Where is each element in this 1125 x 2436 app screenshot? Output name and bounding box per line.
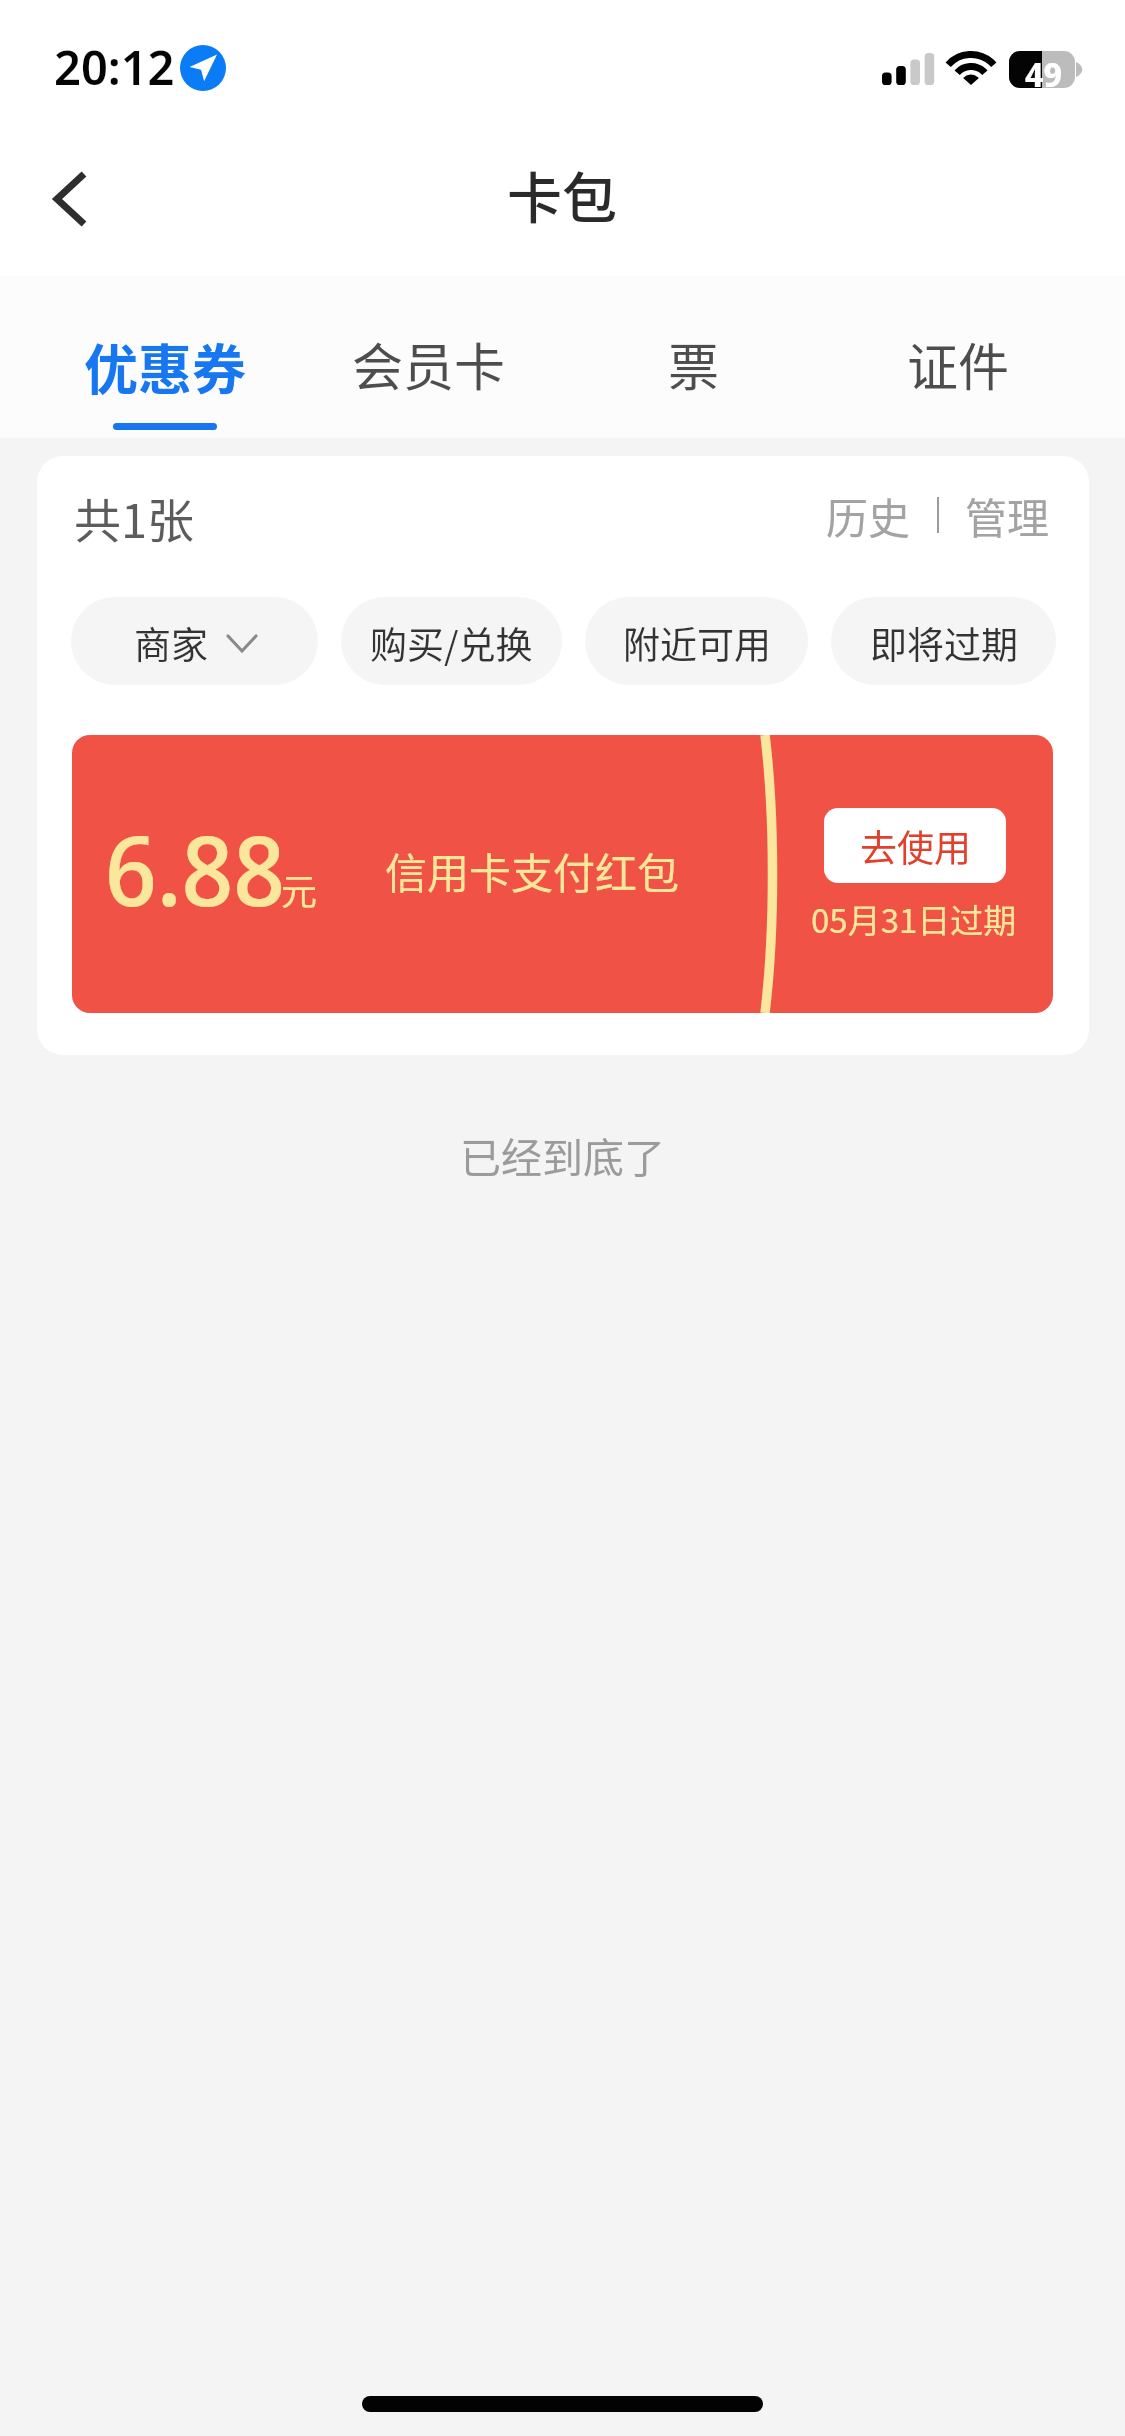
- staticText: 商家: [134, 616, 208, 670]
- button[interactable]: 6.88: [72, 735, 1053, 1013]
- button[interactable]: 管理: [965, 483, 1050, 547]
- button[interactable]: 附近可用: [585, 597, 808, 685]
- button[interactable]: Back: [26, 156, 118, 248]
- button[interactable]: 证件: [826, 300, 1090, 438]
- staticText: 购买/兑换: [370, 616, 533, 670]
- button[interactable]: 历史: [826, 483, 911, 547]
- staticText: 6.88: [105, 803, 286, 934]
- staticText: 去使用: [860, 819, 971, 873]
- staticText: 已经到底了: [0, 1125, 1125, 1184]
- staticText: 信用卡支付红包: [385, 840, 680, 901]
- button[interactable]: 去使用: [824, 808, 1006, 883]
- staticText: 票: [668, 327, 720, 401]
- button[interactable]: 会员卡: [297, 300, 561, 438]
- staticText: 会员卡: [352, 327, 506, 401]
- staticText: 元: [281, 863, 318, 915]
- staticText: 卡包: [507, 154, 618, 234]
- staticText: 管理: [965, 485, 1050, 546]
- staticText: 证件: [907, 327, 1010, 401]
- button[interactable]: 即将过期: [831, 597, 1056, 685]
- button[interactable]: 商家: [71, 597, 318, 685]
- button[interactable]: 购买/兑换: [341, 597, 562, 685]
- staticText: 05月31日过期: [811, 895, 1017, 943]
- staticText: 附近可用: [623, 616, 771, 670]
- staticText: 即将过期: [870, 616, 1018, 670]
- button[interactable]: 票: [562, 300, 826, 438]
- staticText: 历史: [826, 485, 911, 546]
- staticText: 20:12: [54, 35, 175, 99]
- staticText: 优惠券: [84, 327, 246, 405]
- staticText: 共1张: [74, 483, 195, 547]
- button[interactable]: 优惠券: [33, 300, 297, 438]
- staticText: 49: [1025, 51, 1062, 88]
